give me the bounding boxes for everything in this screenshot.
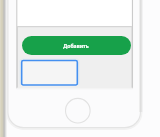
staticText: Добавить — [63, 43, 89, 50]
button[interactable]: Добавить — [22, 36, 131, 55]
button[interactable]: Text field — [18, 57, 81, 89]
